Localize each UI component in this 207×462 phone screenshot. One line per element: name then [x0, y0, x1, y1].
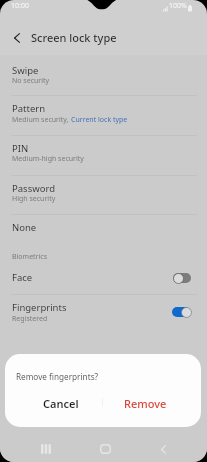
button[interactable]: Password: [0, 175, 207, 215]
staticText: Face: [12, 271, 33, 284]
button[interactable]: PIN: [0, 135, 207, 175]
staticText: Screen lock type: [31, 30, 117, 45]
button[interactable]: Face: [0, 266, 207, 294]
staticText: Registered: [12, 314, 48, 324]
staticText: Medium security,: [12, 115, 71, 125]
staticText: No security: [12, 76, 50, 86]
staticText: Pattern: [12, 102, 46, 115]
staticText: Cancel: [43, 396, 79, 411]
button[interactable]: Recents: [26, 438, 66, 460]
button[interactable]: Pattern: [0, 95, 207, 134]
staticText: PIN: [12, 142, 29, 155]
button[interactable]: Fingerprints: [0, 294, 207, 334]
button[interactable]: Cancel: [13, 391, 108, 415]
button[interactable]: None: [0, 214, 207, 243]
staticText: 10:00: [11, 1, 29, 11]
staticText: Remove fingerprints?: [16, 371, 99, 382]
staticText: Password: [12, 182, 55, 195]
staticText: Fingerprints: [12, 301, 67, 314]
button[interactable]: Swipe: [0, 55, 207, 95]
staticText: Remove: [124, 396, 167, 411]
button[interactable]: Home: [85, 438, 125, 460]
staticText: Medium-high security: [12, 154, 84, 164]
button[interactable]: Remove: [104, 391, 199, 415]
staticText: Swipe: [12, 64, 39, 77]
staticText: None: [12, 221, 37, 234]
staticText: High security: [12, 194, 56, 204]
button[interactable]: Navigate up: [6, 27, 28, 49]
staticText: 100%: [169, 1, 187, 11]
staticText: Biometrics: [12, 252, 48, 262]
staticText: Current lock type: [71, 115, 128, 125]
